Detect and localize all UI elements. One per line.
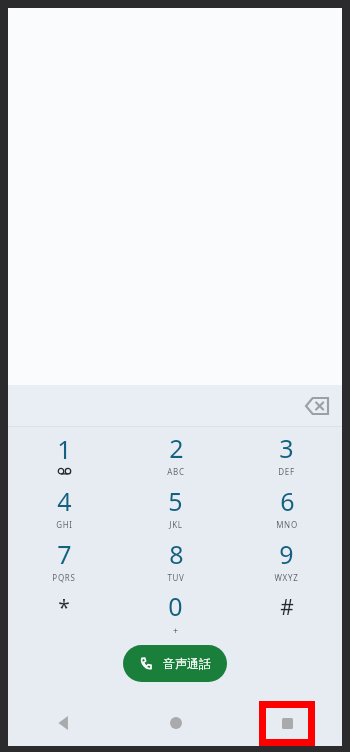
button[interactable]: 7 xyxy=(8,533,120,586)
button[interactable]: # xyxy=(231,586,342,638)
button[interactable]: Recent apps xyxy=(266,708,308,739)
staticText: MNO xyxy=(276,519,298,530)
button[interactable]: 6 xyxy=(231,480,342,533)
staticText: 2 xyxy=(169,431,184,465)
staticText: 1 xyxy=(57,432,72,466)
staticText: GHI xyxy=(56,519,73,530)
staticText: + xyxy=(173,624,179,636)
button[interactable]: 1 xyxy=(8,427,120,480)
button[interactable]: 4 xyxy=(8,480,120,533)
staticText: DEF xyxy=(278,466,295,477)
staticText: 音声通話 xyxy=(163,656,211,671)
button[interactable]: 8 xyxy=(120,533,231,586)
button[interactable]: 音声通話 xyxy=(123,645,227,682)
staticText: 3 xyxy=(279,431,294,465)
button[interactable]: 2 xyxy=(120,427,231,480)
button[interactable]: * xyxy=(8,586,120,638)
staticText: 9 xyxy=(279,537,294,571)
staticText: # xyxy=(280,593,294,622)
staticText: 5 xyxy=(168,484,183,518)
staticText: JKL xyxy=(169,519,183,530)
staticText: TUV xyxy=(167,572,185,583)
staticText: 0 xyxy=(168,589,183,623)
button[interactable]: 3 xyxy=(231,427,342,480)
button[interactable]: Backspace xyxy=(300,389,334,423)
button[interactable]: 5 xyxy=(120,480,231,533)
staticText: WXYZ xyxy=(274,572,299,583)
staticText: PQRS xyxy=(52,572,76,583)
button[interactable]: Back xyxy=(8,700,120,746)
button[interactable]: Home xyxy=(120,700,231,746)
staticText: 8 xyxy=(169,537,184,571)
staticText: 6 xyxy=(280,484,295,518)
staticText: 7 xyxy=(57,537,72,571)
staticText: 4 xyxy=(57,484,72,518)
button[interactable]: 9 xyxy=(231,533,342,586)
staticText: * xyxy=(58,593,70,622)
staticText: ABC xyxy=(167,466,185,477)
button[interactable]: 0 xyxy=(120,586,231,638)
